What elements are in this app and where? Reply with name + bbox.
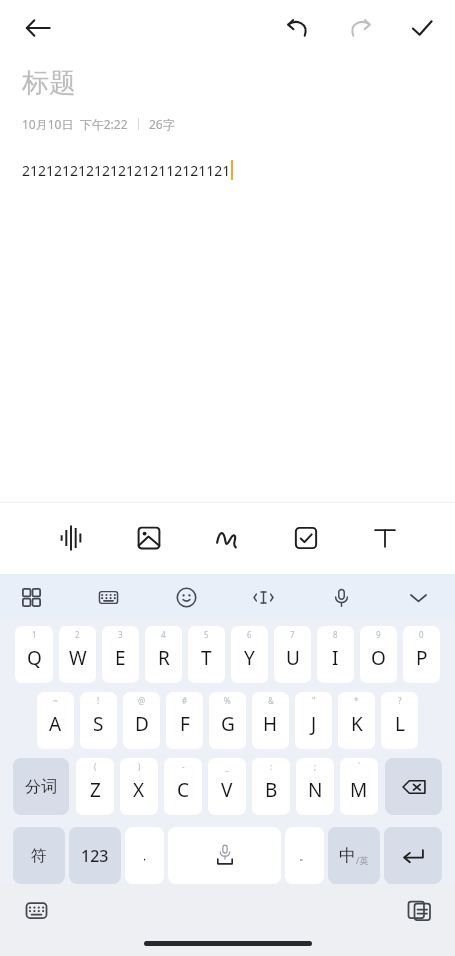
- button[interactable]: Switch keyboard: [14, 888, 58, 932]
- button[interactable]: ?: [381, 692, 418, 749]
- button[interactable]: ，: [125, 827, 164, 884]
- button[interactable]: 123: [69, 827, 121, 884]
- staticText: 26字: [149, 116, 175, 132]
- button[interactable]: 9: [360, 626, 397, 683]
- button[interactable]: _: [208, 758, 246, 815]
- button[interactable]: Image: [125, 514, 173, 562]
- staticText: -: [182, 761, 185, 772]
- button[interactable]: Voice input: [320, 576, 362, 618]
- staticText: 分词: [25, 777, 57, 797]
- staticText: #: [182, 695, 188, 706]
- staticText: 中: [339, 845, 356, 866]
- button[interactable]: Done: [401, 7, 443, 49]
- staticText: _: [225, 761, 229, 772]
- staticText: /英: [356, 854, 369, 866]
- staticText: ?: [398, 695, 402, 706]
- staticText: %: [224, 695, 231, 706]
- button[interactable]: ": [295, 692, 332, 749]
- button[interactable]: Redo: [339, 7, 381, 49]
- button[interactable]: ): [120, 758, 158, 815]
- staticText: A: [49, 711, 62, 737]
- staticText: *: [354, 695, 359, 706]
- staticText: ): [138, 761, 141, 772]
- staticText: ~: [53, 695, 58, 706]
- staticText: (: [94, 761, 97, 772]
- staticText: !: [97, 695, 100, 706]
- staticText: H: [263, 711, 278, 737]
- button[interactable]: 6: [231, 626, 268, 683]
- button[interactable]: 5: [188, 626, 225, 683]
- staticText: &: [268, 695, 274, 706]
- button[interactable]: Voice: [47, 514, 95, 562]
- button[interactable]: Backspace: [385, 758, 442, 815]
- staticText: @: [138, 695, 146, 706]
- staticText: U: [286, 645, 300, 671]
- staticText: 。: [299, 849, 310, 863]
- staticText: `: [358, 761, 361, 772]
- staticText: 1: [32, 629, 37, 640]
- button[interactable]: #: [166, 692, 203, 749]
- staticText: 6: [247, 629, 252, 640]
- button[interactable]: (: [76, 758, 114, 815]
- button[interactable]: 8: [317, 626, 354, 683]
- button[interactable]: ~: [37, 692, 74, 749]
- button[interactable]: Handwriting: [204, 514, 252, 562]
- button[interactable]: Hide keyboard: [397, 576, 439, 618]
- button[interactable]: Enter: [384, 827, 442, 884]
- staticText: 标题: [22, 66, 76, 100]
- button[interactable]: Checklist: [282, 514, 330, 562]
- staticText: 2: [75, 629, 80, 640]
- button[interactable]: 4: [145, 626, 182, 683]
- staticText: 4: [161, 629, 166, 640]
- staticText: 7: [290, 629, 295, 640]
- button[interactable]: Recent apps: [397, 888, 441, 932]
- staticText: 8: [333, 629, 338, 640]
- button[interactable]: 中: [328, 827, 380, 884]
- staticText: X: [133, 777, 145, 803]
- button[interactable]: @: [123, 692, 160, 749]
- staticText: G: [221, 711, 235, 737]
- button[interactable]: 3: [102, 626, 139, 683]
- button[interactable]: 1: [15, 626, 53, 683]
- staticText: T: [201, 645, 212, 671]
- staticText: Z: [90, 777, 101, 803]
- button[interactable]: %: [209, 692, 246, 749]
- button[interactable]: ;: [296, 758, 334, 815]
- staticText: E: [115, 645, 126, 671]
- staticText: ": [312, 695, 316, 706]
- staticText: 0: [419, 629, 424, 640]
- button[interactable]: -: [164, 758, 202, 815]
- button[interactable]: Cursor move: [242, 576, 284, 618]
- staticText: B: [265, 777, 278, 803]
- staticText: ;: [314, 761, 317, 772]
- staticText: V: [221, 777, 233, 803]
- button[interactable]: Text style: [361, 514, 409, 562]
- button[interactable]: `: [340, 758, 378, 815]
- staticText: D: [135, 711, 149, 737]
- button[interactable]: Apps: [10, 576, 52, 618]
- staticText: K: [351, 711, 363, 737]
- button[interactable]: 2: [59, 626, 96, 683]
- staticText: 21212121212121212112121121: [22, 161, 231, 180]
- button[interactable]: *: [338, 692, 375, 749]
- button[interactable]: Space: [168, 827, 281, 884]
- staticText: 符: [31, 846, 47, 866]
- staticText: Y: [244, 645, 255, 671]
- button[interactable]: Undo: [277, 7, 319, 49]
- button[interactable]: 。: [285, 827, 324, 884]
- button[interactable]: 0: [403, 626, 440, 683]
- button[interactable]: 7: [274, 626, 311, 683]
- staticText: 10月10日 下午2:22: [22, 116, 128, 132]
- button[interactable]: 分词: [13, 758, 69, 815]
- staticText: ，: [139, 849, 150, 863]
- staticText: O: [371, 645, 386, 671]
- button[interactable]: :: [252, 758, 290, 815]
- button[interactable]: 符: [13, 827, 65, 884]
- staticText: M: [350, 777, 368, 803]
- button[interactable]: Emoji: [165, 576, 207, 618]
- button[interactable]: Back: [14, 4, 62, 52]
- button[interactable]: &: [252, 692, 289, 749]
- button[interactable]: Keyboard layout: [87, 576, 129, 618]
- button[interactable]: !: [80, 692, 117, 749]
- staticText: P: [416, 645, 428, 671]
